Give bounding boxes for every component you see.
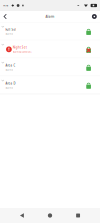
staticText: Alarm [45, 14, 54, 18]
button[interactable]: Full Set [0, 22, 100, 40]
staticText: Night Set [13, 46, 27, 49]
staticText: Disarmed [5, 68, 13, 71]
button[interactable]: Area C [0, 58, 100, 76]
button[interactable]: Recents [72, 210, 84, 221]
button[interactable]: Back [16, 209, 28, 222]
staticText: Disarmed [5, 32, 13, 35]
staticText: 14:15 [3, 4, 8, 7]
button[interactable]: Back [0, 11, 10, 22]
button[interactable]: Settings [89, 11, 100, 22]
button[interactable]: Night Set [0, 40, 100, 58]
staticText: Disarmed [5, 86, 13, 89]
staticText: Full Set [5, 28, 16, 31]
button[interactable]: Area D [0, 76, 100, 94]
staticText: Area D [5, 82, 15, 85]
staticText: Disarmed(Cannot Set) [13, 50, 32, 53]
button[interactable]: Home [44, 209, 56, 222]
staticText: Area C [5, 64, 15, 67]
